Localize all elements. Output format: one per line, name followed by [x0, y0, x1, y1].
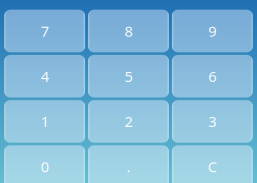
- staticText: 0: [41, 157, 49, 176]
- button[interactable]: 3: [172, 100, 253, 143]
- staticText: 9: [208, 21, 216, 41]
- button[interactable]: 1: [4, 100, 85, 143]
- staticText: 7: [41, 21, 49, 41]
- button[interactable]: 2: [88, 100, 169, 143]
- staticText: 3: [208, 112, 216, 131]
- button[interactable]: 4: [4, 55, 85, 97]
- button[interactable]: 9: [172, 10, 253, 52]
- button[interactable]: 7: [4, 10, 85, 52]
- staticText: .: [126, 157, 130, 176]
- staticText: 8: [124, 21, 132, 41]
- staticText: 2: [124, 112, 132, 131]
- button[interactable]: .: [88, 145, 169, 183]
- staticText: C: [208, 157, 217, 176]
- button[interactable]: 0: [4, 145, 85, 183]
- button[interactable]: 5: [88, 55, 169, 97]
- staticText: 1: [41, 112, 49, 131]
- button[interactable]: 8: [88, 10, 169, 52]
- staticText: 6: [208, 66, 216, 86]
- staticText: 5: [124, 66, 132, 86]
- staticText: 4: [41, 66, 49, 86]
- button[interactable]: 6: [172, 55, 253, 97]
- button[interactable]: C: [172, 145, 253, 183]
